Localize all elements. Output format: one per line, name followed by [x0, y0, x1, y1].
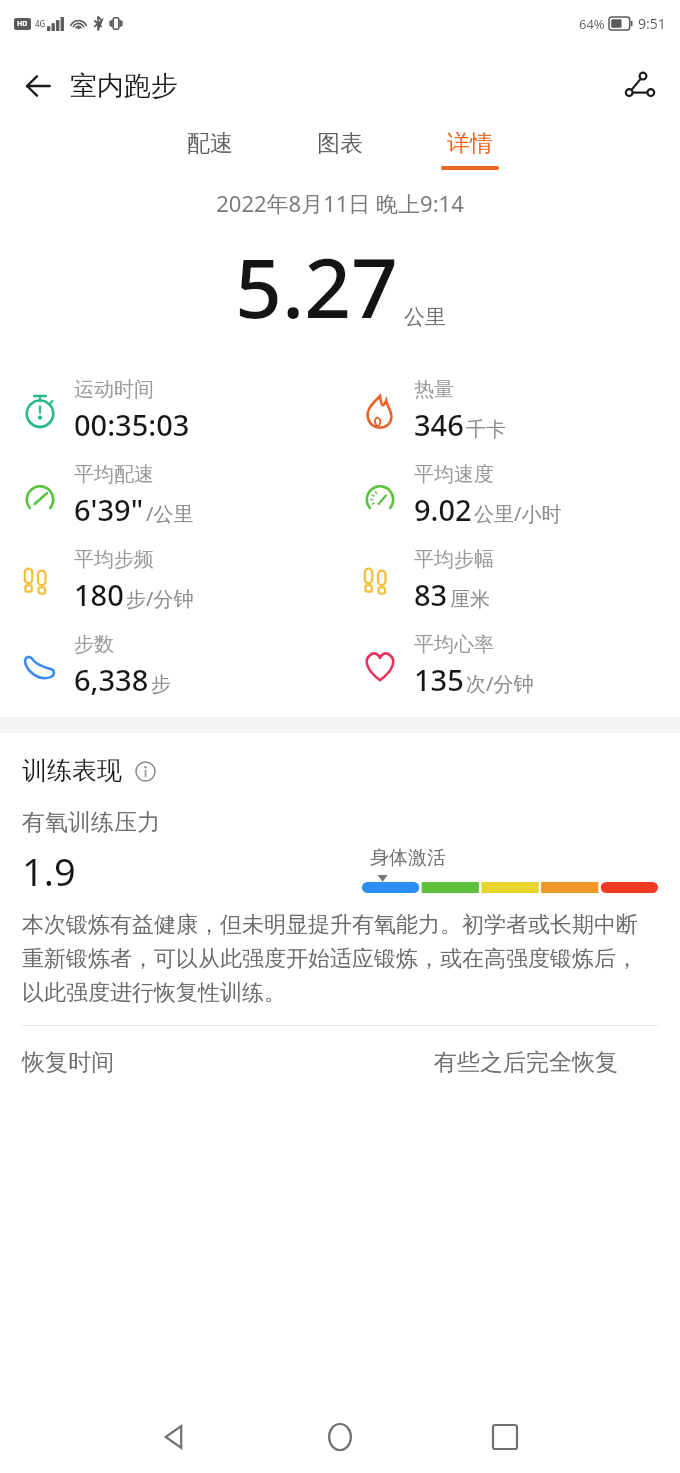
staticText: 平均步频	[74, 547, 154, 572]
staticText: 平均心率	[414, 632, 494, 657]
staticText: 2022年8月11日 晚上9:14	[216, 188, 464, 218]
staticText: 步/分钟	[126, 585, 194, 612]
staticText: 64%	[579, 15, 605, 33]
button[interactable]: Recents	[475, 1407, 535, 1467]
staticText: 平均速度	[414, 462, 494, 487]
staticText: 详情	[447, 129, 493, 158]
button[interactable]: Home	[310, 1407, 370, 1467]
staticText: 有氧训练压力	[22, 808, 160, 837]
staticText: 9:51	[638, 14, 666, 33]
staticText: 图表	[317, 129, 363, 158]
staticText: 次/分钟	[466, 670, 534, 697]
staticText: 6'39"	[74, 490, 144, 529]
staticText: 恢复时间	[22, 1048, 114, 1077]
staticText: 平均配速	[74, 462, 154, 487]
button[interactable]: 配速	[173, 125, 247, 174]
staticText: 00:35:03	[74, 405, 190, 444]
button[interactable]: 平均速度	[340, 453, 680, 538]
staticText: 公里/小时	[474, 500, 562, 527]
staticText: 本次锻炼有益健康，但未明显提升有氧能力。初学者或长期中断重新锻炼者，可以从此强度…	[22, 911, 658, 1007]
staticText: 步	[151, 672, 171, 697]
button[interactable]: Share	[614, 60, 666, 112]
staticText: 1.9	[22, 845, 76, 897]
staticText: 4G	[35, 18, 46, 29]
button[interactable]: 平均步幅	[340, 538, 680, 623]
staticText: 180	[74, 575, 124, 614]
staticText: 身体激活	[370, 846, 446, 870]
staticText: 千卡	[466, 417, 506, 442]
staticText: 5.27	[235, 230, 399, 342]
button[interactable]: 热量	[340, 368, 680, 453]
staticText: 平均步幅	[414, 547, 494, 572]
staticText: /公里	[146, 500, 194, 527]
staticText: 135	[414, 660, 464, 699]
staticText: 9.02	[414, 490, 472, 529]
staticText: 训练表现	[22, 755, 122, 786]
staticText: 6,338	[74, 660, 149, 699]
button[interactable]: 平均心率	[340, 623, 680, 708]
staticText: 配速	[187, 129, 233, 158]
staticText: 步数	[74, 632, 114, 657]
staticText: 346	[414, 405, 464, 444]
staticText: 室内跑步	[70, 69, 178, 103]
staticText: 热量	[414, 377, 454, 402]
button[interactable]: Back	[145, 1407, 205, 1467]
staticText: 83	[414, 575, 448, 614]
staticText: 公里	[404, 304, 446, 330]
staticText: 有些之后完全恢复	[434, 1048, 618, 1077]
button[interactable]: Info	[131, 757, 159, 785]
button[interactable]: Back	[14, 62, 62, 110]
staticText: 运动时间	[74, 377, 154, 402]
staticText: HD	[17, 19, 28, 29]
button[interactable]: 图表	[303, 125, 377, 174]
button[interactable]: 步数	[0, 623, 340, 708]
button[interactable]: 平均步频	[0, 538, 340, 623]
button[interactable]: 平均配速	[0, 453, 340, 538]
button[interactable]: 详情	[433, 125, 507, 174]
button[interactable]: 运动时间	[0, 368, 340, 453]
staticText: 厘米	[450, 587, 490, 612]
